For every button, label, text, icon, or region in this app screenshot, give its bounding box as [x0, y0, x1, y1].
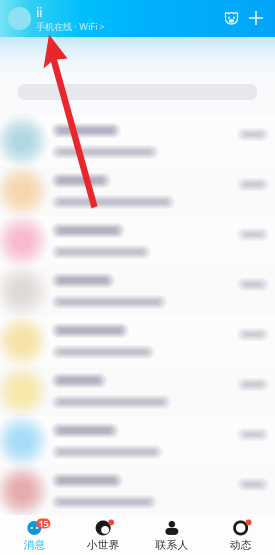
staticText: 手机在线 · WiFi >: [36, 20, 104, 33]
button[interactable]: [0, 166, 275, 216]
button[interactable]: [0, 216, 275, 266]
button[interactable]: Profile: [8, 7, 31, 30]
button[interactable]: [0, 316, 275, 366]
button[interactable]: 动态: [206, 515, 275, 555]
staticText: ii: [36, 4, 42, 20]
button[interactable]: 15: [0, 515, 69, 555]
staticText: 15: [38, 517, 48, 530]
button[interactable]: Mini world: [211, 8, 244, 28]
staticText: 动态: [230, 538, 252, 551]
staticText: 联系人: [155, 538, 188, 551]
button[interactable]: 小世界: [69, 515, 138, 555]
staticText: 小世界: [87, 538, 120, 551]
button[interactable]: [0, 116, 275, 166]
button[interactable]: [0, 466, 275, 516]
button[interactable]: Add: [244, 10, 268, 27]
button[interactable]: 联系人: [137, 515, 206, 555]
button[interactable]: [0, 416, 275, 466]
staticText: 消息: [23, 538, 45, 551]
button[interactable]: [0, 266, 275, 316]
button[interactable]: [0, 366, 275, 416]
